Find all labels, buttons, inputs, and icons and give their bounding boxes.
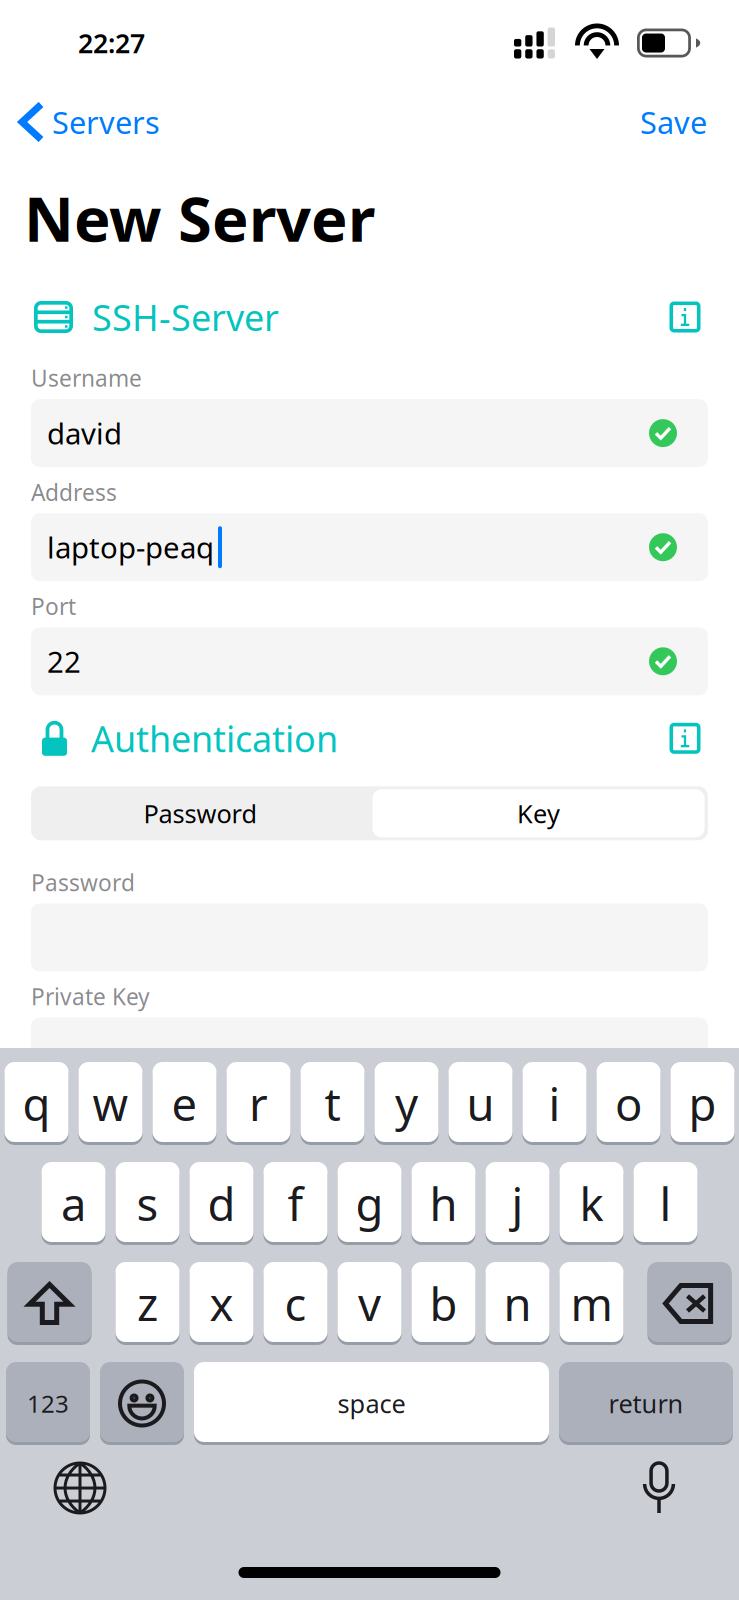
staticText: g — [355, 1173, 383, 1234]
staticText: Key — [517, 796, 560, 830]
staticText: v — [358, 1273, 381, 1334]
staticText: a — [61, 1173, 86, 1234]
button[interactable]: y — [374, 1062, 438, 1145]
staticText: f — [287, 1173, 303, 1234]
staticText: SSH-Server — [92, 293, 279, 341]
staticText: h — [429, 1173, 457, 1234]
button[interactable]: Authentication info — [664, 717, 706, 759]
button[interactable]: o — [596, 1062, 660, 1145]
button[interactable]: 123 — [6, 1362, 90, 1445]
staticText: p — [688, 1073, 716, 1134]
button[interactable]: u — [448, 1062, 512, 1145]
button[interactable]: s — [115, 1162, 179, 1245]
button[interactable]: SSH-Server info — [664, 296, 706, 338]
button[interactable]: a — [41, 1162, 105, 1245]
staticText: o — [615, 1073, 642, 1134]
staticText: c — [284, 1273, 306, 1334]
button[interactable]: Key — [369, 786, 707, 840]
staticText: i — [548, 1073, 560, 1134]
staticText: r — [249, 1073, 268, 1134]
button[interactable]: e — [152, 1062, 216, 1145]
staticText: Save — [640, 102, 707, 142]
staticText: Port — [31, 591, 76, 621]
staticText: m — [570, 1273, 612, 1334]
button[interactable]: space — [194, 1362, 549, 1445]
staticText: laptop-peaq — [47, 528, 214, 567]
staticText: Password — [31, 867, 135, 897]
staticText: david — [47, 414, 122, 453]
staticText: s — [136, 1173, 158, 1234]
staticText: k — [579, 1173, 603, 1234]
staticText: Username — [31, 363, 142, 393]
staticText: t — [324, 1073, 340, 1134]
staticText: Address — [31, 477, 117, 507]
button[interactable]: i — [522, 1062, 586, 1145]
staticText: Servers — [52, 102, 160, 142]
staticText: 22 — [47, 642, 81, 681]
staticText: New Server — [24, 177, 375, 259]
staticText: e — [171, 1073, 197, 1134]
button[interactable]: Next keyboard — [0, 1463, 105, 1513]
staticText: d — [207, 1173, 235, 1234]
button[interactable]: m — [559, 1262, 623, 1345]
button[interactable]: Delete — [647, 1262, 731, 1345]
button[interactable]: Password — [31, 786, 369, 840]
staticText: x — [209, 1273, 233, 1334]
staticText: w — [92, 1073, 128, 1134]
staticText: n — [503, 1273, 531, 1334]
button[interactable]: return — [559, 1362, 733, 1445]
button[interactable]: h — [411, 1162, 475, 1245]
button[interactable]: g — [337, 1162, 401, 1245]
button[interactable]: l — [633, 1162, 697, 1245]
button[interactable]: Dictation — [641, 1463, 739, 1513]
staticText: u — [466, 1073, 494, 1134]
button[interactable]: Emoji — [100, 1362, 184, 1445]
button[interactable]: Servers — [0, 94, 160, 150]
staticText: j — [511, 1173, 523, 1234]
button[interactable]: j — [485, 1162, 549, 1245]
button[interactable]: b — [411, 1262, 475, 1345]
button[interactable]: p — [670, 1062, 734, 1145]
button[interactable]: r — [226, 1062, 290, 1145]
button[interactable]: Shift — [7, 1262, 91, 1345]
staticText: 123 — [27, 1388, 69, 1419]
button[interactable]: d — [189, 1162, 253, 1245]
button[interactable]: n — [485, 1262, 549, 1345]
staticText: y — [395, 1073, 418, 1134]
button[interactable]: k — [559, 1162, 623, 1245]
button[interactable]: x — [189, 1262, 253, 1345]
button[interactable]: w — [78, 1062, 142, 1145]
staticText: 22:27 — [78, 25, 145, 61]
button[interactable]: t — [300, 1062, 364, 1145]
button[interactable]: v — [337, 1262, 401, 1345]
staticText: return — [608, 1387, 683, 1420]
button[interactable]: c — [263, 1262, 327, 1345]
staticText: Private Key — [31, 981, 150, 1011]
staticText: z — [137, 1273, 158, 1334]
staticText: Password — [143, 796, 257, 830]
staticText: space — [337, 1387, 405, 1420]
staticText: q — [22, 1073, 50, 1134]
button[interactable]: Save — [640, 94, 739, 150]
button[interactable]: q — [4, 1062, 68, 1145]
button[interactable]: f — [263, 1162, 327, 1245]
staticText: l — [659, 1173, 671, 1234]
staticText: b — [429, 1273, 457, 1334]
staticText: Authentication — [91, 714, 338, 762]
button[interactable]: z — [115, 1262, 179, 1345]
